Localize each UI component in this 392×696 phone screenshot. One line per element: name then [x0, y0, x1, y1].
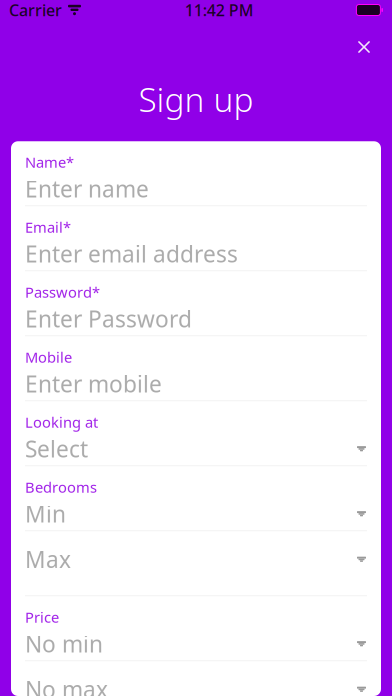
- staticText: Enter email address: [25, 239, 238, 269]
- staticText: Min: [25, 499, 66, 529]
- staticText: 11:42 PM: [185, 0, 254, 21]
- staticText: Max: [25, 544, 71, 574]
- button[interactable]: Name*: [11, 141, 381, 205]
- button[interactable]: Email*: [11, 205, 381, 270]
- staticText: Price: [25, 607, 59, 627]
- staticText: No min: [25, 629, 103, 659]
- staticText: Password*: [25, 282, 100, 302]
- staticText: Name*: [25, 152, 74, 172]
- button[interactable]: Looking at: [11, 400, 381, 465]
- button[interactable]: Price: [11, 595, 381, 660]
- staticText: Looking at: [25, 412, 98, 432]
- staticText: Bedrooms: [25, 477, 97, 497]
- staticText: Carrier: [9, 0, 62, 21]
- button[interactable]: Password*: [11, 270, 381, 335]
- staticText: Enter Password: [25, 304, 192, 334]
- staticText: Email*: [25, 217, 71, 237]
- staticText: Mobile: [25, 347, 72, 367]
- staticText: Enter mobile: [25, 369, 162, 399]
- button[interactable]: Bedrooms: [11, 465, 381, 530]
- staticText: No max: [25, 674, 108, 696]
- button[interactable]: Mobile: [11, 335, 381, 400]
- staticText: Select: [25, 434, 88, 464]
- staticText: Sign up: [138, 77, 253, 121]
- button[interactable]: Close: [344, 27, 384, 67]
- button[interactable]: No max: [11, 660, 381, 696]
- button[interactable]: Max: [11, 530, 381, 595]
- staticText: Enter name: [25, 174, 149, 204]
